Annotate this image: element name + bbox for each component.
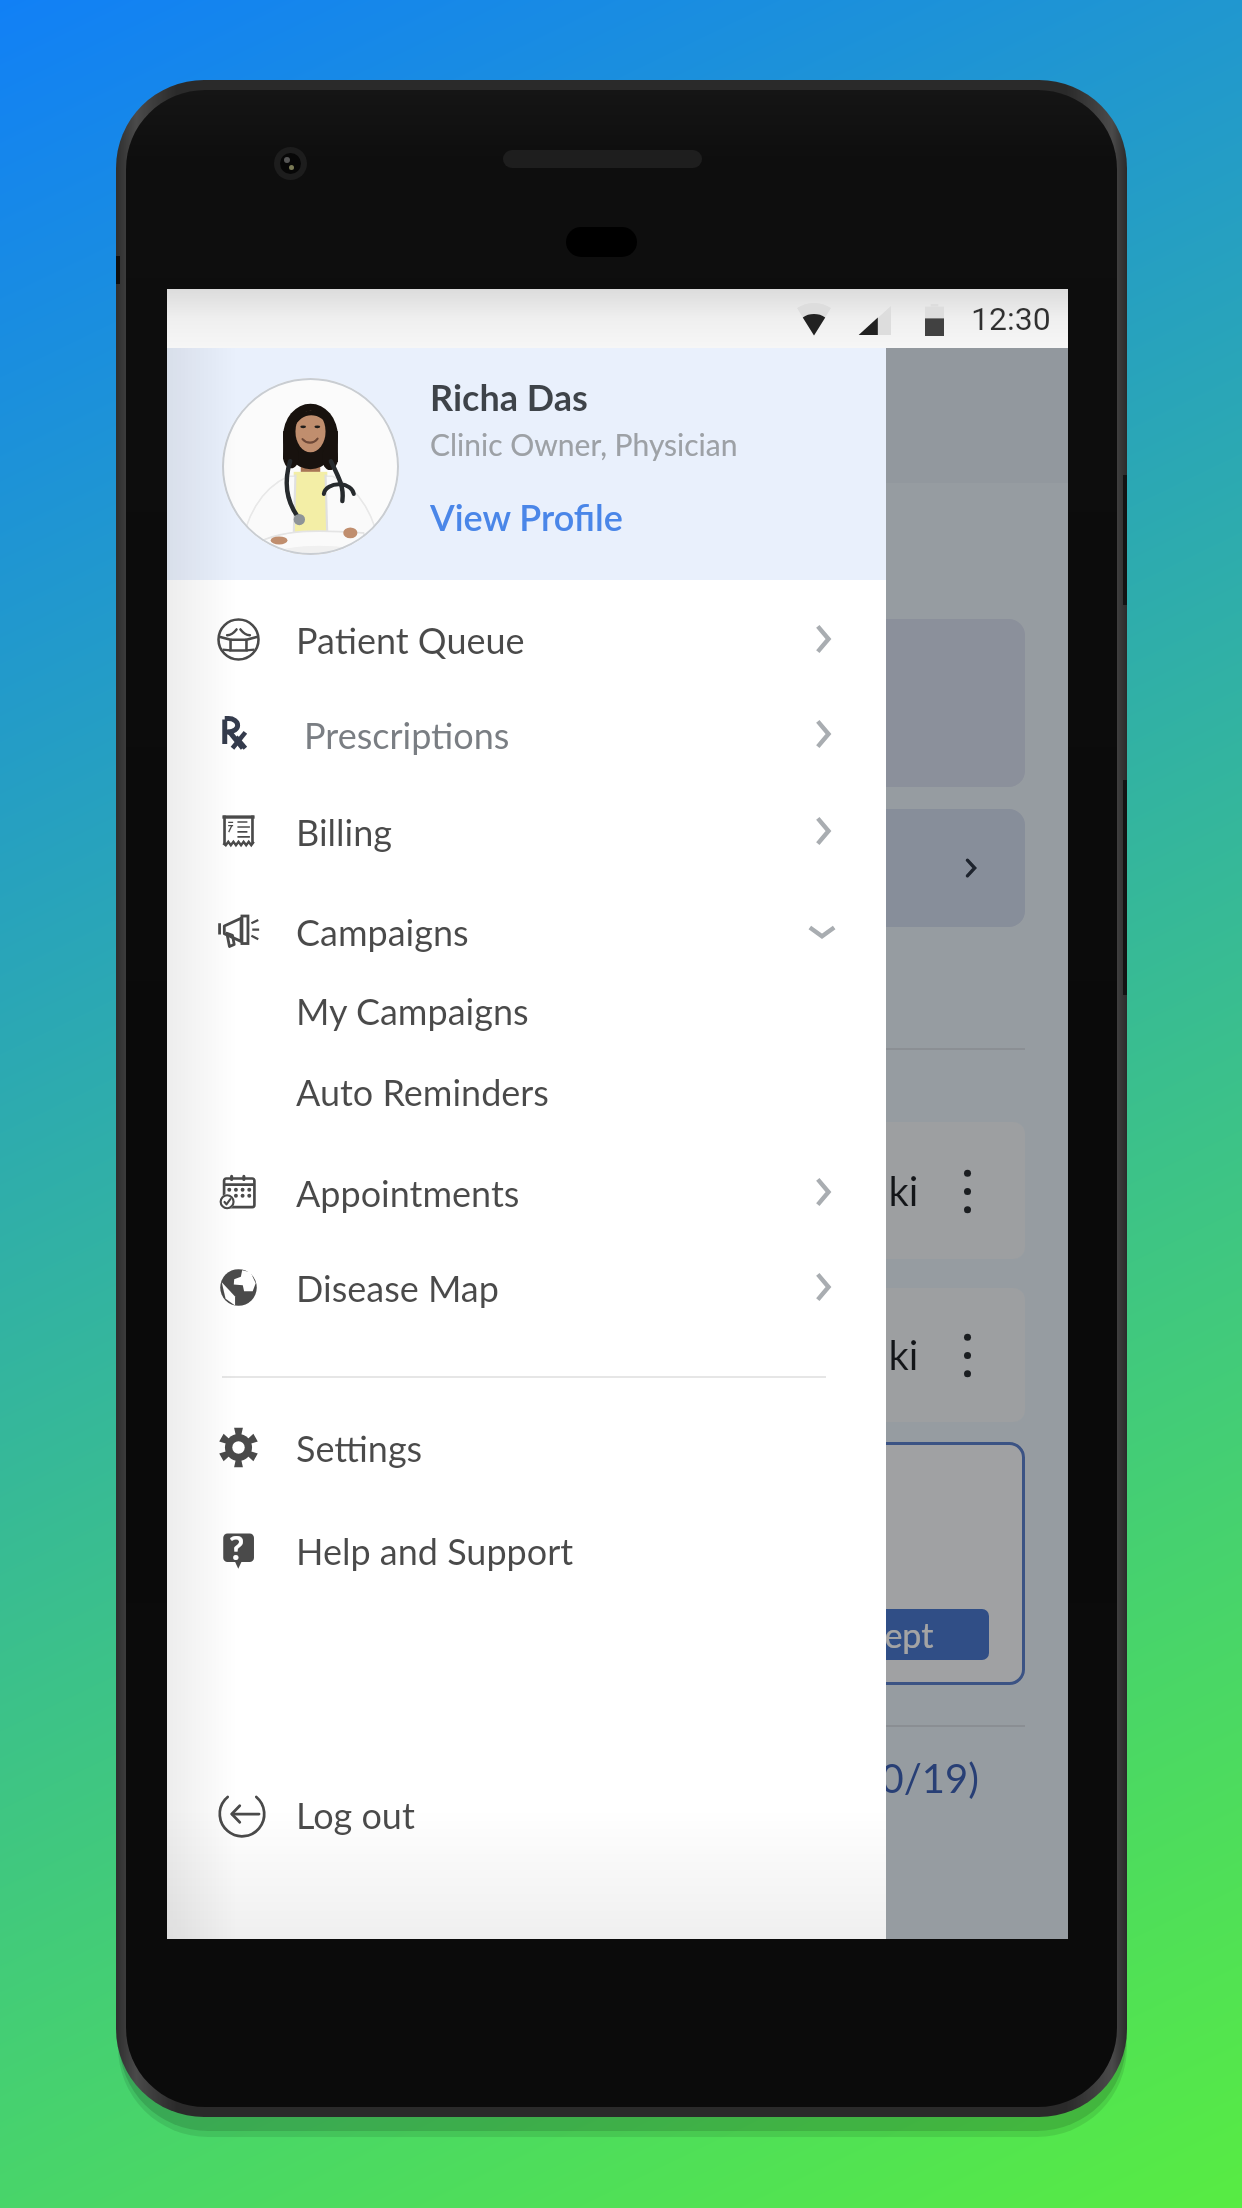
button[interactable]: Log out xyxy=(167,1764,886,1864)
button[interactable] xyxy=(211,809,1025,927)
button[interactable]: Accept xyxy=(775,1609,989,1660)
staticText: Log out xyxy=(296,1793,415,1836)
staticText: Appointments xyxy=(296,1171,520,1214)
staticText: My Campaigns xyxy=(296,989,529,1032)
staticText: Richa Das xyxy=(430,375,588,418)
staticText: Campaigns xyxy=(296,910,469,953)
staticText: Auto Reminders xyxy=(296,1070,549,1113)
button[interactable]: More options xyxy=(939,1327,995,1383)
button[interactable]: Settings xyxy=(167,1397,886,1497)
button[interactable]: Profile photo of Richa Das xyxy=(222,378,399,555)
button[interactable]: Patient Queue xyxy=(167,589,886,689)
button[interactable]: My Campaigns xyxy=(167,960,886,1060)
staticText: Mrs. Ritu Solanki xyxy=(623,1167,919,1215)
staticText: Clinic Owner, Physician xyxy=(430,426,738,462)
button[interactable]: Auto Reminders xyxy=(167,1041,886,1141)
staticText: Disease Map xyxy=(296,1266,499,1309)
staticText: Help and Support xyxy=(296,1529,574,1572)
staticText: Patient Queue xyxy=(296,618,525,661)
button[interactable]: Prescriptions xyxy=(167,684,886,784)
staticText: Accept xyxy=(830,1614,934,1655)
button[interactable]: Appointments xyxy=(167,1142,886,1242)
staticText: Billing xyxy=(296,810,392,853)
staticText: 12:30 xyxy=(971,300,1051,338)
staticText: Last visit (28/10/19) xyxy=(619,1754,979,1802)
button[interactable]: Profile photo of Richa Das xyxy=(167,348,886,580)
button[interactable]: ? xyxy=(167,1500,886,1600)
button[interactable]: Disease Map xyxy=(167,1237,886,1337)
staticText: ? xyxy=(229,1527,245,1567)
button[interactable]: Billing xyxy=(167,781,886,881)
staticText: Prescriptions xyxy=(304,713,510,756)
button[interactable]: More options xyxy=(939,1163,995,1219)
staticText: Mrs. Ritu Solanki xyxy=(623,1331,919,1379)
button[interactable]: View Profile xyxy=(430,495,623,538)
button[interactable]: Campaigns xyxy=(167,881,886,981)
staticText: Settings xyxy=(296,1426,423,1469)
